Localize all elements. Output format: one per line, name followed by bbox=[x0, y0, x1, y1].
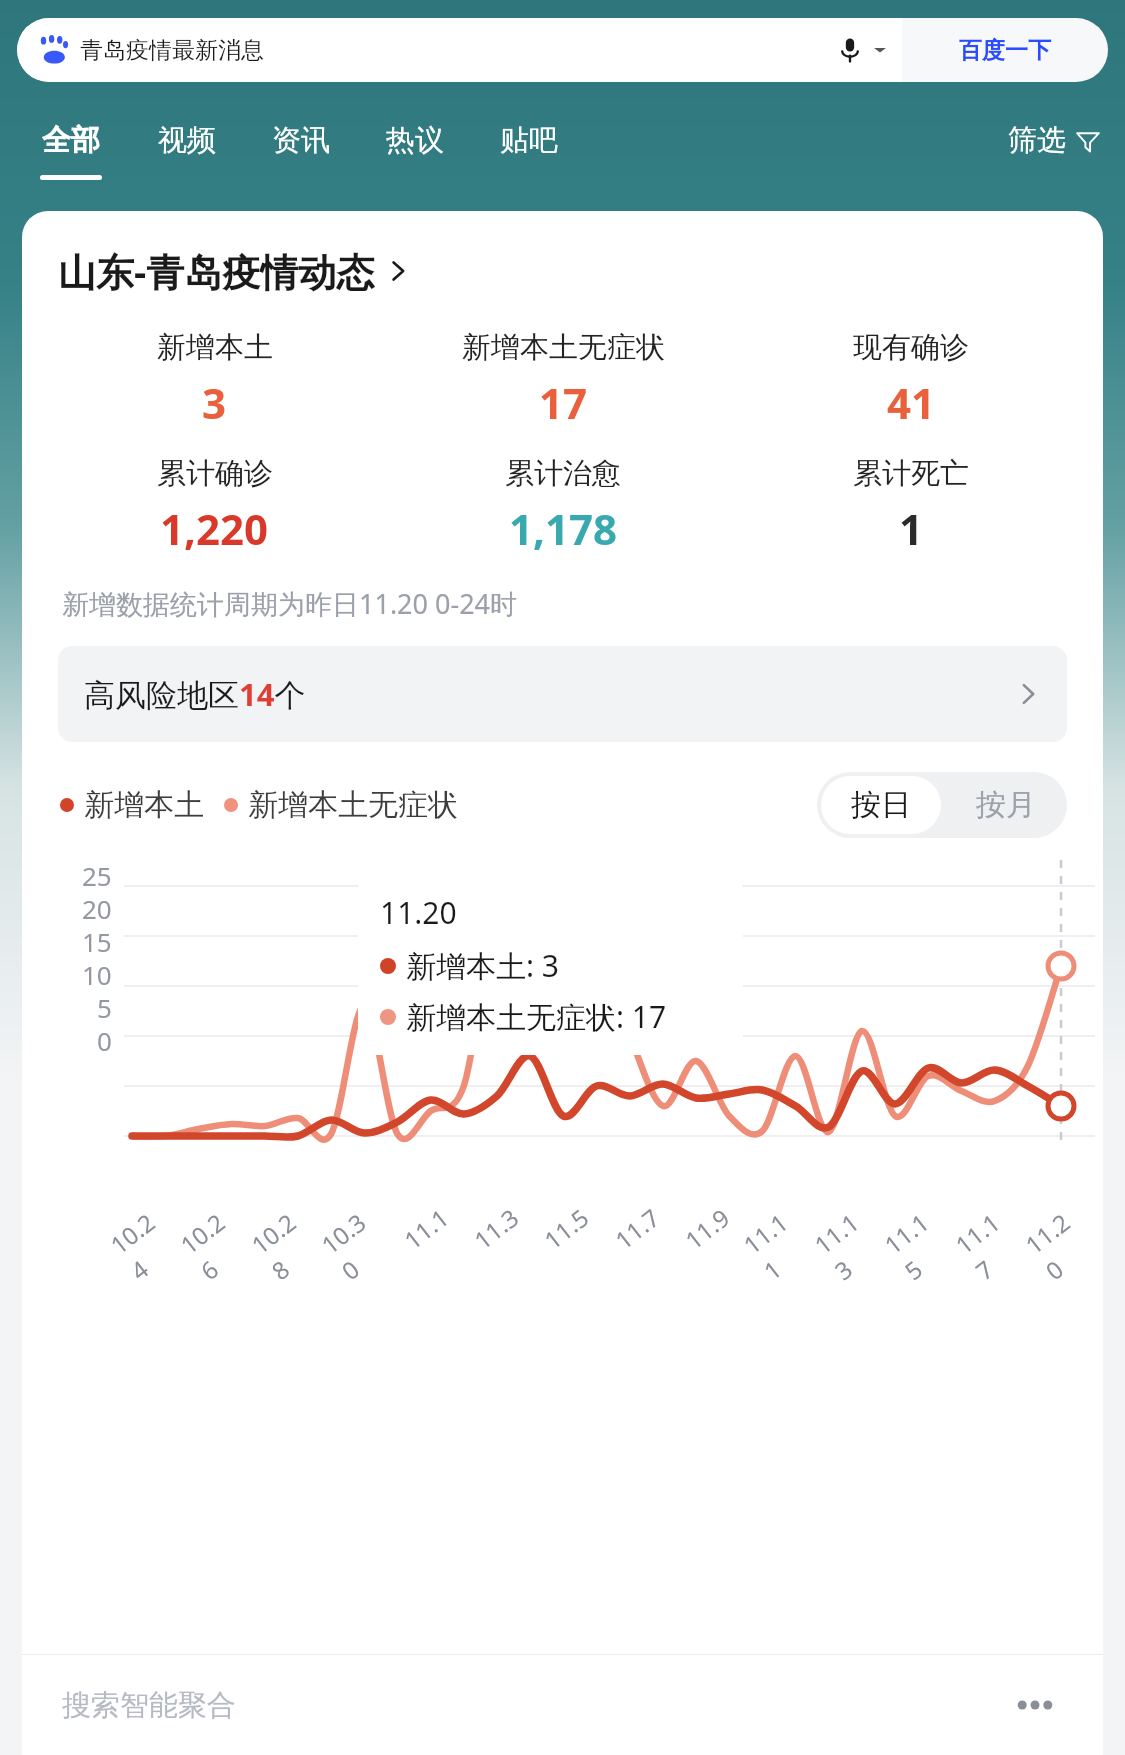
staticText: 10 bbox=[82, 957, 112, 990]
staticText: 百度一下 bbox=[959, 36, 1051, 65]
staticText: 11.17 bbox=[948, 1203, 1030, 1287]
staticText: 视频 bbox=[158, 122, 216, 159]
staticText: 累计确诊 bbox=[157, 455, 273, 492]
button[interactable]: 按月 bbox=[945, 776, 1067, 834]
staticText: 1,178 bbox=[509, 500, 618, 557]
staticText: 1,220 bbox=[160, 500, 269, 557]
button[interactable]: 搜索智能聚合 bbox=[62, 1655, 1063, 1755]
button[interactable]: 百度一下 bbox=[902, 18, 1108, 82]
staticText: 1 bbox=[899, 500, 924, 557]
staticText: 按日 bbox=[851, 786, 911, 824]
staticText: 10.30 bbox=[314, 1203, 396, 1287]
staticText: 10.24 bbox=[103, 1203, 185, 1287]
staticText: 累计治愈 bbox=[505, 455, 621, 492]
staticText: 青岛疫情最新消息 bbox=[80, 36, 264, 65]
staticText: 20 bbox=[82, 891, 112, 924]
staticText: 新增本土无症状: 17 bbox=[406, 996, 667, 1037]
button[interactable]: 热议 bbox=[386, 100, 444, 175]
staticText: 新增本土 bbox=[157, 329, 273, 366]
staticText: 11.15 bbox=[877, 1203, 959, 1287]
staticText: 11.13 bbox=[807, 1203, 889, 1287]
staticText: 搜索智能聚合 bbox=[62, 1687, 236, 1724]
button[interactable]: 筛选 bbox=[1008, 100, 1101, 159]
button[interactable]: 按日 bbox=[821, 776, 941, 834]
staticText: 41 bbox=[887, 374, 936, 431]
staticText: 11.3 bbox=[467, 1201, 525, 1256]
staticText: 累计死亡 bbox=[853, 455, 969, 492]
staticText: 11.20 bbox=[1018, 1203, 1100, 1287]
button[interactable]: 高风险地区14个 bbox=[58, 646, 1067, 742]
staticText: 筛选 bbox=[1008, 122, 1066, 159]
staticText: 11.20 bbox=[380, 892, 457, 933]
staticText: 5 bbox=[97, 990, 112, 1023]
staticText: 25 bbox=[82, 858, 112, 891]
staticText: 全部 bbox=[42, 122, 100, 159]
staticText: 新增本土 bbox=[84, 786, 204, 824]
staticText: 新增本土无症状 bbox=[248, 786, 458, 824]
button[interactable]: 全部 bbox=[40, 100, 102, 180]
staticText: 山东-青岛疫情动态 bbox=[58, 245, 375, 297]
staticText: 0 bbox=[97, 1023, 112, 1056]
staticText: 10.28 bbox=[244, 1203, 326, 1287]
button[interactable]: 累计确诊 bbox=[40, 455, 389, 557]
staticText: 新增本土无症状 bbox=[462, 329, 665, 366]
button[interactable]: 贴吧 bbox=[500, 100, 558, 175]
button[interactable]: 现有确诊 bbox=[737, 329, 1085, 431]
staticText: 11.5 bbox=[537, 1201, 595, 1256]
staticText: 11.11 bbox=[736, 1203, 818, 1287]
button[interactable]: 更多 bbox=[1007, 1677, 1063, 1733]
button[interactable]: 青岛疫情最新消息 bbox=[17, 18, 902, 82]
staticText: 资讯 bbox=[272, 122, 330, 159]
staticText: 15 bbox=[82, 924, 112, 957]
staticText: 11.9 bbox=[678, 1201, 736, 1256]
button[interactable]: 语音搜索 bbox=[830, 30, 870, 70]
staticText: 高风险地区14个 bbox=[84, 673, 306, 715]
staticText: 新增本土: 3 bbox=[406, 945, 559, 986]
staticText: 11.7 bbox=[608, 1201, 666, 1256]
staticText: 贴吧 bbox=[500, 122, 558, 159]
staticText: 10.26 bbox=[173, 1203, 255, 1287]
button[interactable]: 资讯 bbox=[272, 100, 330, 175]
staticText: 11.1 bbox=[397, 1201, 455, 1256]
button[interactable]: 累计死亡 bbox=[737, 455, 1085, 557]
staticText: 按月 bbox=[976, 786, 1036, 824]
staticText: 新增数据统计周期为昨日11.20 0-24时 bbox=[62, 585, 518, 622]
staticText: 现有确诊 bbox=[853, 329, 969, 366]
button[interactable]: 新增本土无症状 bbox=[389, 329, 737, 431]
staticText: 热议 bbox=[386, 122, 444, 159]
button[interactable]: 山东-青岛疫情动态 bbox=[58, 245, 411, 297]
button[interactable]: 视频 bbox=[158, 100, 216, 175]
staticText: 17 bbox=[539, 374, 588, 431]
button[interactable]: 累计治愈 bbox=[389, 455, 737, 557]
button[interactable]: 新增本土 bbox=[40, 329, 389, 431]
staticText: 3 bbox=[202, 374, 227, 431]
